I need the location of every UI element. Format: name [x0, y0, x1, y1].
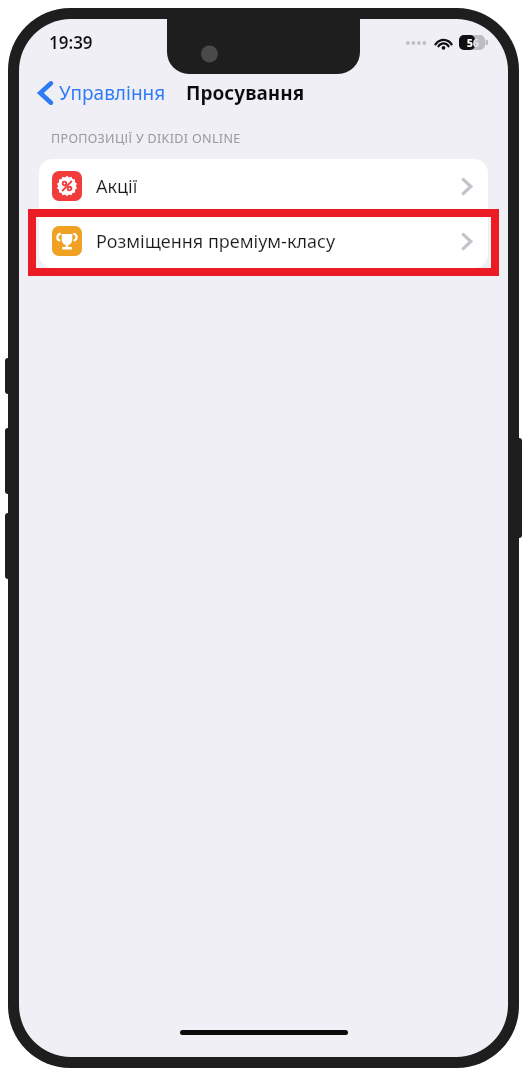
- staticText: ПРОПОЗИЦІЇ У DIKIDI ONLINE: [51, 130, 241, 147]
- staticText: 5: [467, 36, 473, 50]
- staticText: Просування: [186, 80, 305, 106]
- button[interactable]: Акції: [39, 159, 488, 213]
- staticText: Розміщення преміум-класу: [96, 229, 336, 254]
- staticText: 6: [473, 36, 479, 50]
- button[interactable]: Управління: [31, 74, 174, 112]
- button[interactable]: Розміщення преміум-класу: [39, 214, 488, 268]
- staticText: Управління: [59, 80, 166, 106]
- staticText: Акції: [96, 174, 138, 199]
- staticText: 19:39: [49, 31, 93, 54]
